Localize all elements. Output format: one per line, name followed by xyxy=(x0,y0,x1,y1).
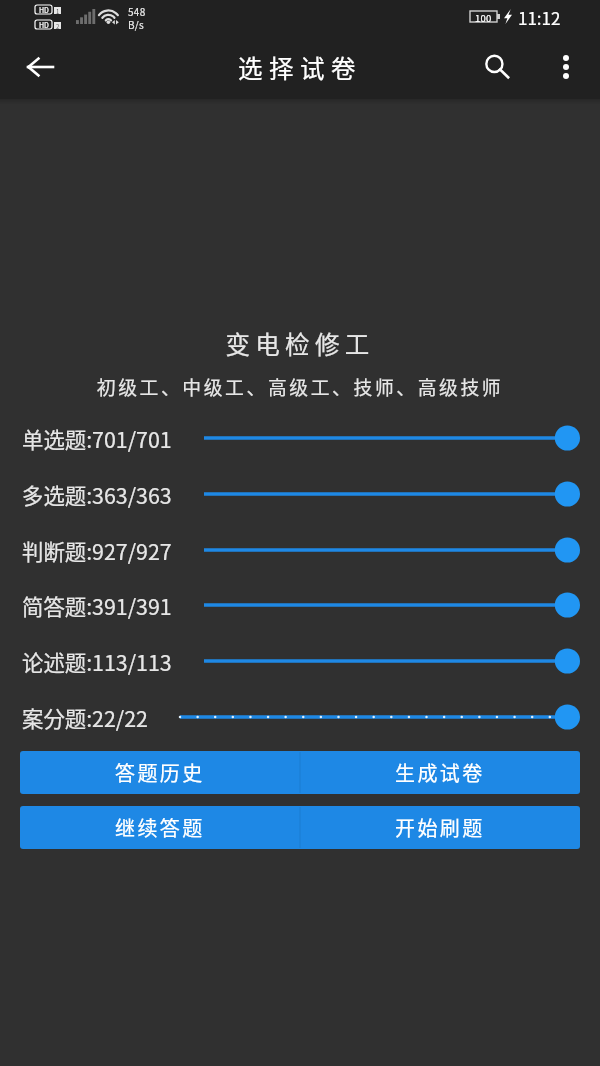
staticText: 多选题:363/363 xyxy=(22,479,172,510)
staticText: 判断题:927/927 xyxy=(22,535,172,566)
staticText: 生成试卷 xyxy=(395,758,485,787)
staticText: B/s xyxy=(128,17,145,31)
staticText: 选择试卷 xyxy=(238,50,362,85)
staticText: 变电检修工 xyxy=(0,326,600,361)
staticText: 论述题:113/113 xyxy=(22,646,172,677)
button[interactable]: 答题历史 xyxy=(20,751,300,794)
button[interactable]: 继续答题 xyxy=(20,806,300,849)
staticText: HD xyxy=(39,5,49,14)
staticText: 1 xyxy=(56,7,60,14)
staticText: 2 xyxy=(56,22,60,29)
staticText: 继续答题 xyxy=(115,813,205,842)
button[interactable] xyxy=(204,590,580,620)
button[interactable]: 生成试卷 xyxy=(300,751,580,794)
button[interactable]: Search xyxy=(473,43,521,91)
button[interactable]: 开始刷题 xyxy=(300,806,580,849)
staticText: 答题历史 xyxy=(115,758,205,787)
button[interactable] xyxy=(204,646,580,676)
staticText: 100 xyxy=(475,11,492,22)
staticText: 开始刷题 xyxy=(395,813,485,842)
button[interactable] xyxy=(204,423,580,453)
staticText: 单选题:701/701 xyxy=(22,423,172,454)
staticText: HD xyxy=(39,20,49,29)
staticText: 548 xyxy=(128,4,146,18)
button[interactable]: More options xyxy=(542,43,590,91)
button[interactable]: Back xyxy=(16,43,64,91)
staticText: 案分题:22/22 xyxy=(22,702,148,733)
button[interactable] xyxy=(204,535,580,565)
button[interactable] xyxy=(180,702,580,732)
staticText: 初级工、中级工、高级工、技师、高级技师 xyxy=(0,373,600,400)
button[interactable] xyxy=(204,479,580,509)
staticText: 11:12 xyxy=(518,5,561,30)
staticText: 简答题:391/391 xyxy=(22,590,172,621)
